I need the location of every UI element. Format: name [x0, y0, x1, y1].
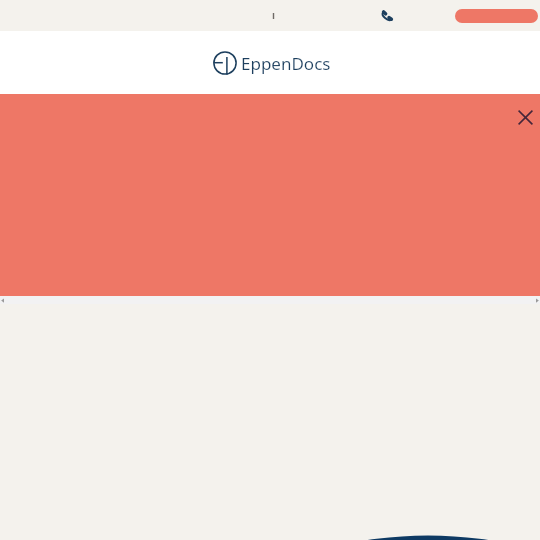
button[interactable]: Scroll right	[532, 296, 540, 304]
button[interactable]: Scroll left	[0, 296, 8, 304]
button[interactable]: Close	[511, 103, 540, 132]
button[interactable]: Recording indicator	[455, 9, 538, 23]
other: Call	[379, 8, 395, 24]
staticText: EppenDocs	[241, 52, 331, 75]
button[interactable]: EppenDocs	[213, 51, 331, 75]
